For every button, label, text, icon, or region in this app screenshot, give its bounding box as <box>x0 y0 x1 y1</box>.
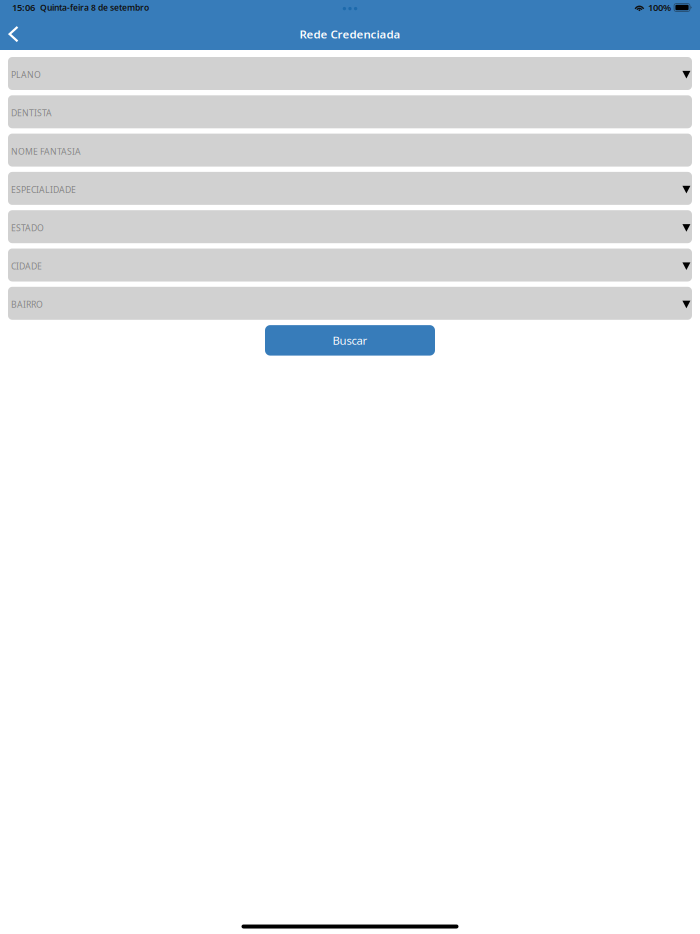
button[interactable]: NOME FANTASIA <box>8 134 692 167</box>
button[interactable]: PLANO <box>8 57 692 90</box>
staticText: DENTISTA <box>11 107 52 119</box>
button[interactable]: CIDADE <box>8 248 692 281</box>
staticText: Quinta-feira 8 de setembro <box>40 2 149 13</box>
button[interactable]: ESPECIALIDADE <box>8 172 692 205</box>
staticText: Rede Credenciada <box>299 26 400 42</box>
staticText: ESPECIALIDADE <box>11 184 76 195</box>
button[interactable]: BAIRRO <box>8 287 692 320</box>
staticText: ESTADO <box>11 222 44 234</box>
staticText: BAIRRO <box>11 299 43 310</box>
staticText: NOME FANTASIA <box>11 145 81 157</box>
button[interactable]: Back <box>0 18 27 50</box>
button[interactable]: Buscar <box>265 325 435 356</box>
staticText: PLANO <box>11 69 41 81</box>
button[interactable]: DENTISTA <box>8 95 692 128</box>
staticText: 100% <box>648 1 671 14</box>
staticText: Buscar <box>332 333 367 348</box>
staticText: CIDADE <box>11 260 42 272</box>
staticText: 15:06 <box>12 1 35 14</box>
button[interactable]: ESTADO <box>8 210 692 243</box>
